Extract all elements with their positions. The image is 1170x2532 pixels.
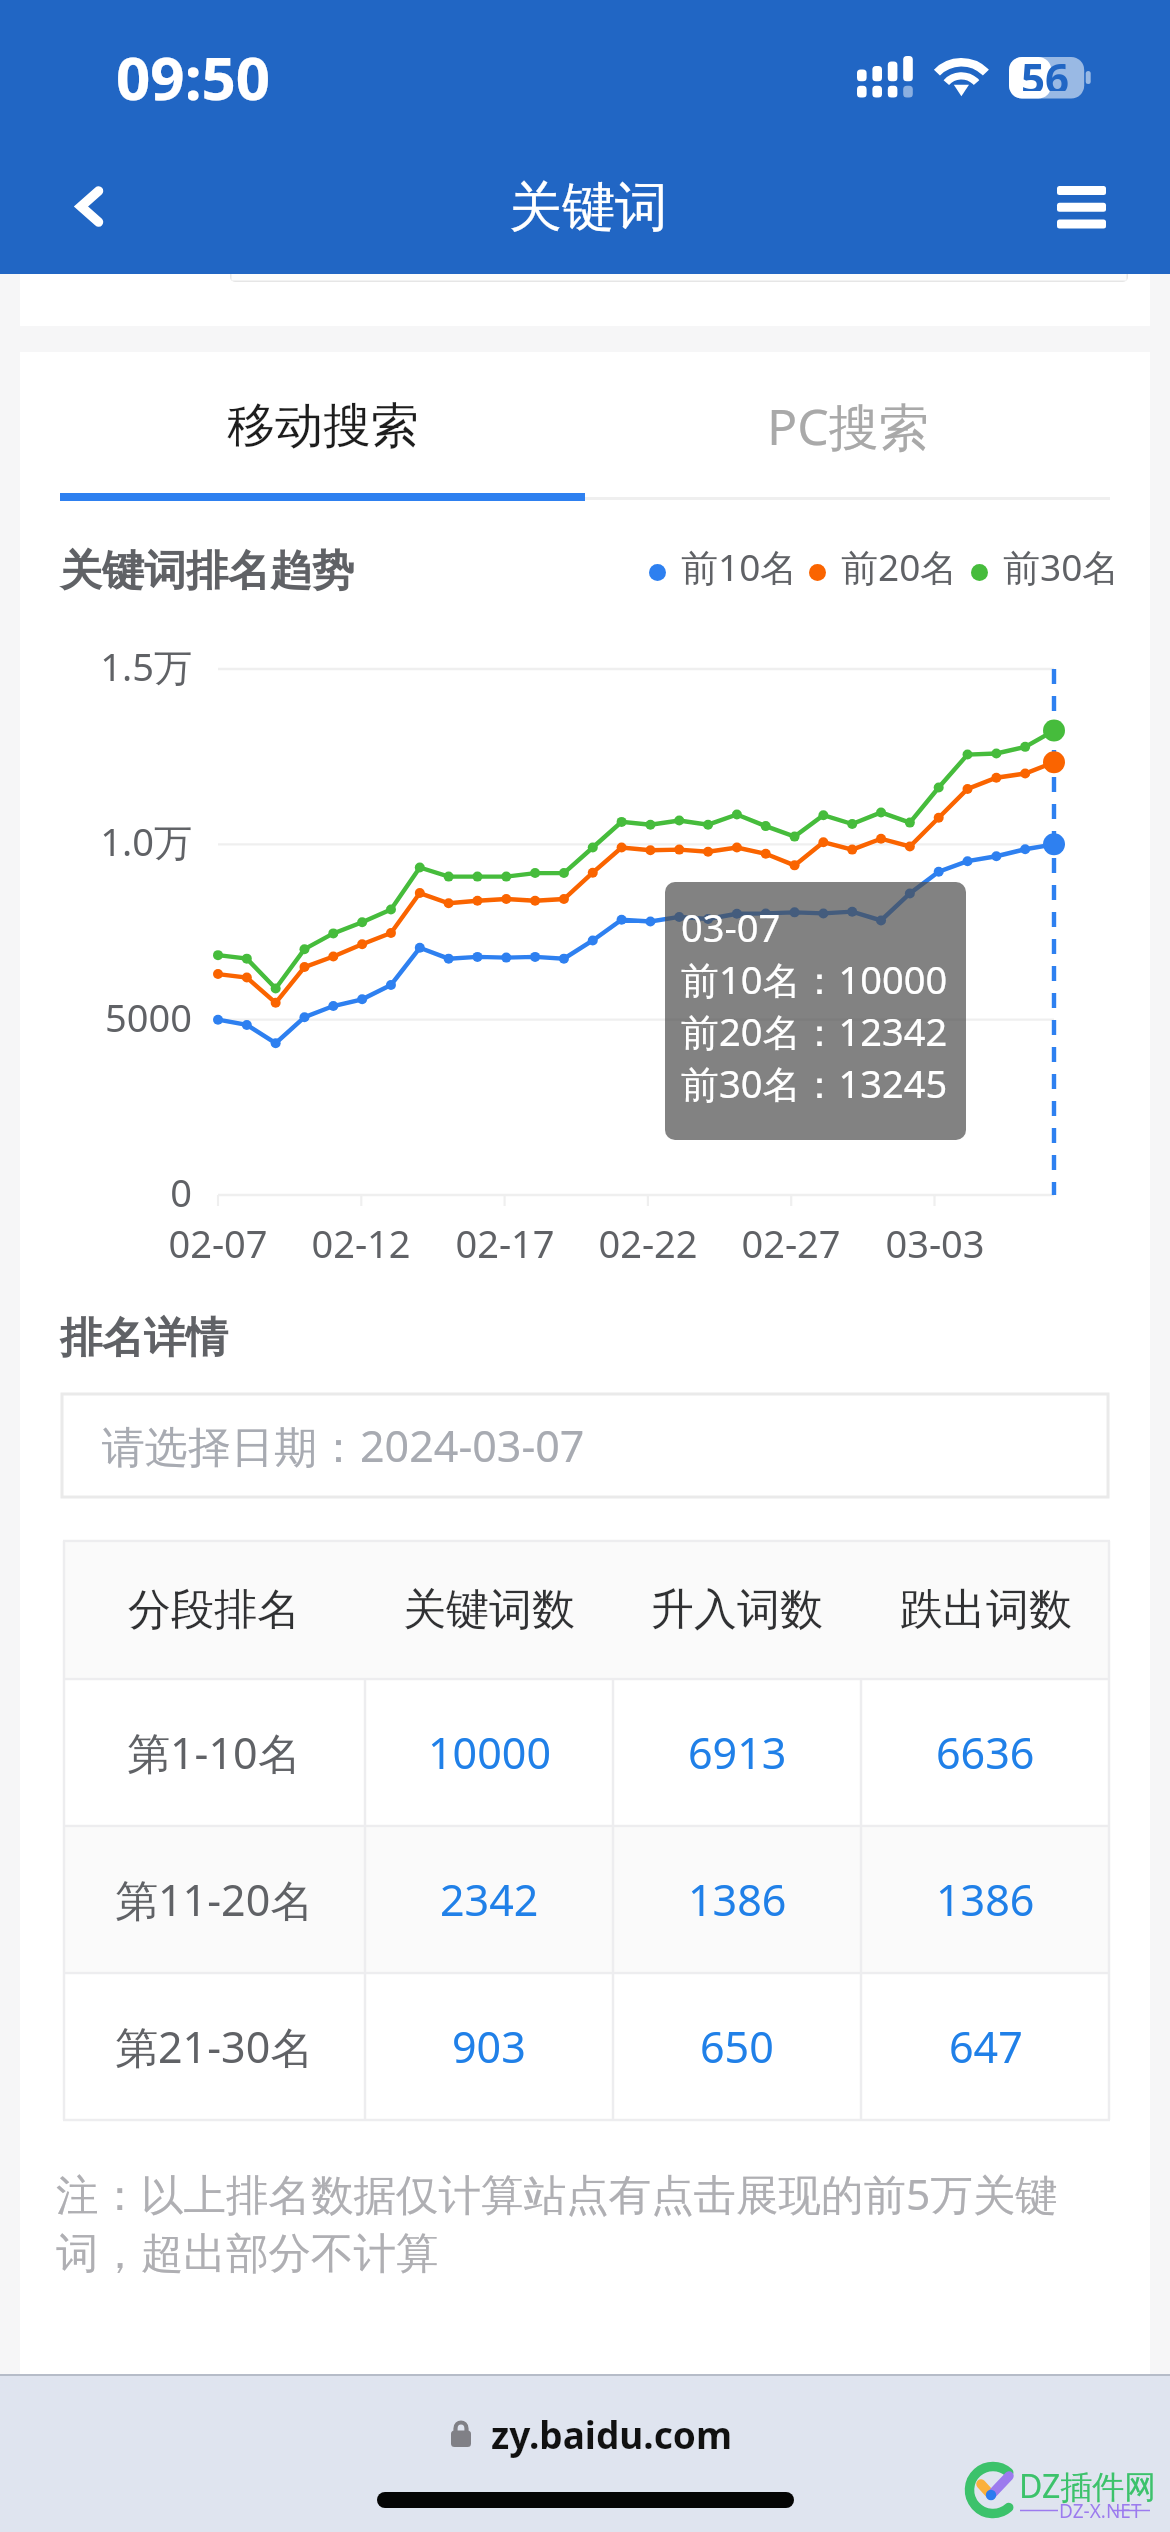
staticText: 前10名: [681, 541, 798, 592]
staticText: 03-07: [681, 901, 781, 953]
staticText: 关键词: [509, 174, 668, 241]
staticText: 跌出词数: [900, 1583, 1072, 1637]
button[interactable]: Menu: [1040, 165, 1124, 249]
button[interactable]: Back: [44, 165, 130, 251]
staticText: DZ-X.NET: [1059, 2498, 1142, 2524]
staticText: 前20名：12342: [681, 1005, 948, 1057]
button[interactable]: 请选择日期：2024-03-07: [62, 1394, 1108, 1497]
staticText: 6913: [688, 1723, 787, 1782]
staticText: 1.5万: [42, 640, 192, 692]
staticText: 10000: [428, 1723, 551, 1782]
button[interactable]: 6636: [861, 1679, 1110, 1826]
button[interactable]: 1386: [613, 1826, 861, 1973]
staticText: 注：以上排名数据仅计算站点有点击展现的前5万关键词，超出部分不计算: [56, 2165, 1086, 2281]
staticText: 第1-10名: [127, 1723, 301, 1782]
staticText: 1386: [688, 1870, 787, 1929]
staticText: 前30名: [1003, 541, 1120, 592]
staticText: 0: [42, 1166, 192, 1218]
button[interactable]: 10000: [365, 1679, 613, 1826]
staticText: zy.baidu.com: [491, 2409, 733, 2459]
staticText: 第21-30名: [115, 2017, 314, 2076]
staticText: 关键词数: [403, 1583, 575, 1637]
button[interactable]: 2342: [365, 1826, 613, 1973]
staticText: 650: [700, 2017, 774, 2076]
staticText: 903: [452, 2017, 526, 2076]
staticText: 1386: [936, 1870, 1035, 1929]
staticText: 升入词数: [651, 1583, 823, 1637]
staticText: 03-03: [850, 1217, 1020, 1269]
button[interactable]: 647: [861, 1973, 1110, 2120]
staticText: 关键词排名趋势: [60, 545, 354, 598]
staticText: 6636: [936, 1723, 1035, 1782]
staticText: 前30名：13245: [681, 1057, 948, 1109]
staticText: 09:50: [116, 36, 271, 118]
staticText: 1.0万: [42, 815, 192, 867]
staticText: PC搜索: [767, 392, 929, 460]
staticText: 02-07: [133, 1217, 303, 1269]
staticText: 02-27: [706, 1217, 876, 1269]
staticText: 02-12: [276, 1217, 446, 1269]
button[interactable]: 6913: [613, 1679, 861, 1826]
button[interactable]: 移动搜索: [20, 352, 585, 494]
staticText: DZ插件网: [1019, 2464, 1157, 2508]
button[interactable]: 903: [365, 1973, 613, 2120]
staticText: 前10名：10000: [681, 953, 948, 1005]
staticText: 5000: [42, 991, 192, 1043]
staticText: 2342: [440, 1870, 539, 1929]
staticText: 第11-20名: [115, 1870, 314, 1929]
staticText: 647: [949, 2017, 1023, 2076]
staticText: 请选择日期：2024-03-07: [102, 1416, 585, 1475]
staticText: 02-22: [563, 1217, 733, 1269]
button[interactable]: zy.baidu.com: [430, 2392, 740, 2472]
staticText: 排名详情: [60, 1312, 228, 1365]
button[interactable]: 1386: [861, 1826, 1110, 1973]
staticText: 移动搜索: [227, 396, 419, 456]
staticText: 02-17: [420, 1217, 590, 1269]
staticText: 前20名: [841, 541, 958, 592]
button[interactable]: PC搜索: [585, 352, 1150, 494]
button[interactable]: 650: [613, 1973, 861, 2120]
staticText: 分段排名: [128, 1583, 300, 1637]
staticText: 56: [1021, 49, 1070, 91]
